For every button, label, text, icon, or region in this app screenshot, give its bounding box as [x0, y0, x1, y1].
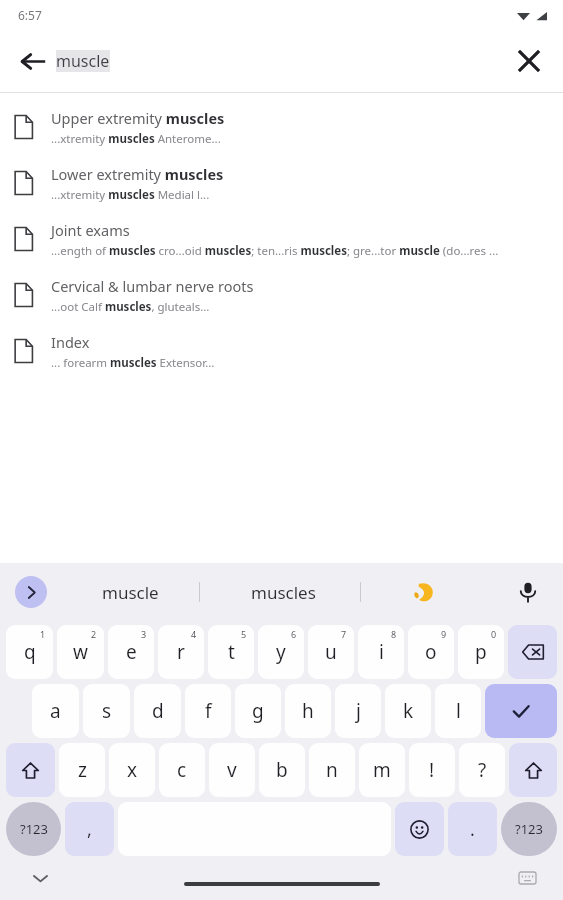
staticText: ...ength of muscles cro...oid muscles; t… — [51, 243, 499, 259]
button[interactable]: Shift right — [509, 743, 557, 797]
button[interactable]: Upper extremity muscles — [0, 99, 563, 155]
button[interactable]: Period — [448, 802, 497, 856]
staticText: 2 — [91, 628, 97, 640]
staticText: s — [102, 698, 112, 724]
button[interactable]: Shift — [6, 743, 55, 797]
button[interactable]: Symbols right — [501, 802, 557, 856]
button[interactable]: s — [83, 684, 130, 738]
button[interactable]: Hide keyboard — [22, 860, 58, 896]
staticText: 0 — [491, 628, 497, 640]
button[interactable]: v — [209, 743, 255, 797]
staticText: ... forearm muscles Extensor... — [51, 355, 215, 371]
staticText: muscles — [251, 581, 316, 604]
button[interactable]: Comma — [65, 802, 114, 856]
staticText: d — [152, 698, 164, 724]
staticText: g — [252, 698, 264, 724]
staticText: Cervical & lumbar nerve roots — [51, 276, 254, 296]
button[interactable]: Voice input — [505, 569, 551, 615]
button[interactable]: Symbols — [6, 802, 61, 856]
button[interactable]: ? — [459, 743, 505, 797]
button[interactable]: Joint exams — [0, 211, 563, 267]
button[interactable]: q — [6, 625, 53, 679]
staticText: t — [228, 639, 235, 665]
button[interactable]: Change keyboard — [509, 860, 545, 896]
button[interactable]: a — [32, 684, 79, 738]
button[interactable]: muscle — [78, 568, 183, 616]
staticText: ! — [429, 757, 435, 783]
staticText: 8 — [391, 628, 397, 640]
button[interactable]: Flexed biceps emoji — [400, 568, 448, 616]
button[interactable]: j — [335, 684, 381, 738]
staticText: k — [403, 698, 414, 724]
button[interactable]: Index — [0, 323, 563, 379]
button[interactable]: u — [308, 625, 354, 679]
button[interactable]: p — [458, 625, 504, 679]
staticText: Index — [51, 332, 90, 352]
staticText: w — [73, 639, 88, 665]
button[interactable]: x — [109, 743, 155, 797]
staticText: h — [302, 698, 314, 724]
button[interactable]: e — [108, 625, 154, 679]
staticText: p — [475, 639, 487, 665]
button[interactable]: Emoji — [395, 802, 444, 856]
staticText: b — [276, 757, 288, 783]
staticText: 4 — [191, 628, 197, 640]
staticText: 5 — [241, 628, 247, 640]
staticText: 1 — [40, 628, 46, 640]
staticText: Lower extremity muscles — [51, 164, 224, 184]
staticText: l — [456, 698, 461, 724]
staticText: ? — [478, 757, 487, 783]
staticText: o — [425, 639, 437, 665]
staticText: ?123 — [515, 820, 543, 838]
staticText: c — [177, 757, 187, 783]
staticText: muscle — [56, 50, 110, 72]
button[interactable]: k — [385, 684, 431, 738]
button[interactable]: b — [259, 743, 305, 797]
staticText: v — [227, 757, 237, 783]
staticText: e — [126, 639, 137, 665]
staticText: 3 — [141, 628, 147, 640]
button[interactable]: t — [208, 625, 254, 679]
staticText: Joint exams — [51, 220, 130, 240]
staticText: n — [326, 757, 338, 783]
staticText: ?123 — [20, 820, 48, 838]
button[interactable]: l — [435, 684, 481, 738]
staticText: muscle — [102, 581, 159, 604]
button[interactable]: i — [358, 625, 404, 679]
button[interactable]: f — [185, 684, 231, 738]
button[interactable]: o — [408, 625, 454, 679]
staticText: i — [379, 639, 384, 665]
staticText: u — [325, 639, 337, 665]
button[interactable]: Backspace — [508, 625, 557, 679]
staticText: 7 — [341, 628, 347, 640]
button[interactable]: muscles — [228, 568, 338, 616]
button[interactable]: h — [285, 684, 331, 738]
button[interactable]: g — [235, 684, 281, 738]
staticText: 6 — [291, 628, 297, 640]
button[interactable]: y — [258, 625, 304, 679]
staticText: y — [276, 639, 286, 665]
staticText: a — [50, 698, 61, 724]
button[interactable]: Clear search — [505, 37, 553, 85]
button[interactable]: Lower extremity muscles — [0, 155, 563, 211]
button[interactable]: z — [59, 743, 105, 797]
button[interactable]: Enter — [485, 684, 557, 738]
button[interactable]: Expand suggestions — [15, 576, 47, 608]
staticText: x — [127, 757, 138, 783]
staticText: r — [177, 639, 185, 665]
button[interactable]: Cervical & lumbar nerve roots — [0, 267, 563, 323]
button[interactable]: w — [57, 625, 104, 679]
button[interactable]: d — [134, 684, 181, 738]
button[interactable]: ! — [409, 743, 455, 797]
staticText: ...oot Calf muscles, gluteals... — [51, 299, 210, 315]
button[interactable]: n — [309, 743, 355, 797]
staticText: q — [24, 639, 36, 665]
button[interactable]: Back — [8, 37, 56, 85]
button[interactable]: r — [158, 625, 204, 679]
button[interactable]: m — [359, 743, 405, 797]
staticText: f — [205, 698, 212, 724]
button[interactable]: c — [159, 743, 205, 797]
staticText: 9 — [441, 628, 447, 640]
staticText: Upper extremity muscles — [51, 108, 225, 128]
